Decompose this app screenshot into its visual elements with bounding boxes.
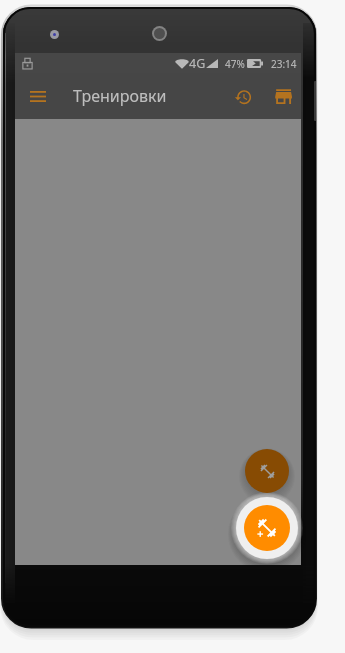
- staticText: 4G: [189, 55, 206, 72]
- staticText: Тренировки: [73, 85, 167, 107]
- button[interactable]: Start empty workout: [245, 449, 289, 493]
- button[interactable]: History: [221, 76, 261, 116]
- staticText: 47%: [225, 57, 245, 71]
- button[interactable]: Store: [261, 76, 301, 116]
- button[interactable]: New workout: [236, 497, 298, 559]
- staticText: 23:14: [271, 57, 297, 71]
- button[interactable]: Open navigation menu: [15, 74, 60, 119]
